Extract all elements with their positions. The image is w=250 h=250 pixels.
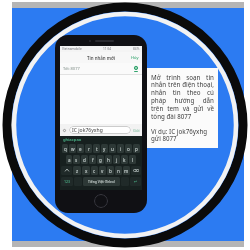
staticText: j xyxy=(116,157,118,163)
button[interactable]: h xyxy=(105,155,112,164)
staticText: 11:54 xyxy=(103,47,112,51)
staticText: f xyxy=(92,157,94,163)
button[interactable]: a xyxy=(66,155,72,164)
button[interactable]: w xyxy=(69,144,76,153)
button[interactable]: v xyxy=(99,166,106,175)
staticText: Tiếng Việt (Telex) xyxy=(88,179,115,184)
staticText: 84% xyxy=(133,47,140,51)
staticText: Vietnamobile xyxy=(62,47,82,51)
staticText: ↵ xyxy=(134,179,138,184)
button[interactable]: Camera xyxy=(62,124,140,136)
staticText: b xyxy=(109,168,112,174)
staticText: g xyxy=(99,157,102,163)
staticText: u xyxy=(111,146,114,152)
staticText: Tới: 8077 xyxy=(63,66,80,71)
staticText: n xyxy=(117,168,120,174)
staticText: ghiacpao xyxy=(63,137,82,143)
button[interactable]: Enter xyxy=(130,177,141,186)
staticText: y xyxy=(103,146,106,152)
staticText: IC jok76yxhg xyxy=(72,127,103,134)
staticText: q xyxy=(64,146,67,152)
button[interactable]: Shift xyxy=(61,166,72,175)
button[interactable]: t xyxy=(93,144,100,153)
button[interactable]: i xyxy=(117,144,124,153)
staticText: i xyxy=(120,146,122,152)
button[interactable]: d xyxy=(81,155,88,164)
staticText: Gửi xyxy=(133,128,140,133)
staticText: a xyxy=(68,157,71,163)
other: Camera xyxy=(62,128,67,133)
button[interactable]: Backspace xyxy=(131,166,141,175)
button[interactable]: l xyxy=(129,155,136,164)
button[interactable]: y xyxy=(101,144,108,153)
button[interactable]: f xyxy=(89,155,96,164)
button[interactable]: r xyxy=(85,144,92,153)
button[interactable]: e xyxy=(77,144,84,153)
button[interactable]: u xyxy=(109,144,116,153)
staticText: w xyxy=(71,146,75,152)
staticText: z xyxy=(76,168,79,174)
button[interactable]: j xyxy=(113,155,120,164)
staticText: e xyxy=(79,146,82,152)
other: Add contact xyxy=(133,66,139,72)
button[interactable]: c xyxy=(91,166,98,175)
button[interactable]: Home xyxy=(94,194,108,208)
button[interactable]: n xyxy=(115,166,122,175)
staticText: Tin nhắn mới xyxy=(87,55,116,61)
button[interactable]: k xyxy=(121,155,128,164)
button[interactable]: g xyxy=(97,155,104,164)
staticText: Ví dụ: IC jok76yxhg gửi 8077 xyxy=(151,127,214,143)
button[interactable]: 123 xyxy=(61,177,73,186)
staticText: l xyxy=(132,157,134,163)
staticText: ⌫ xyxy=(133,168,139,173)
staticText: o xyxy=(127,146,130,152)
button[interactable]: Tới: 8077 xyxy=(63,63,139,74)
staticText: s xyxy=(75,157,78,163)
button[interactable]: b xyxy=(107,166,114,175)
staticText: v xyxy=(101,168,104,174)
button[interactable]: Hủy xyxy=(131,55,139,60)
button[interactable]: m xyxy=(123,166,130,175)
button[interactable]: Vietnamobile xyxy=(55,35,147,213)
button[interactable]: x xyxy=(82,166,90,175)
staticText: 123 xyxy=(64,179,71,184)
staticText: p xyxy=(135,146,138,152)
button[interactable]: o xyxy=(125,144,132,153)
staticText: t xyxy=(96,146,98,152)
staticText: h xyxy=(107,157,110,163)
button[interactable]: Mở trình soạn tin nhắn trên điện thoại, … xyxy=(147,68,218,148)
button[interactable]: Tiếng Việt (Telex) xyxy=(83,177,120,186)
staticText: k xyxy=(123,157,126,163)
staticText: x xyxy=(85,168,88,174)
staticText: Mở trình soạn tin nhắn trên điện thoại, … xyxy=(151,73,214,121)
staticText: c xyxy=(93,168,96,174)
button[interactable]: z xyxy=(73,166,81,175)
staticText: d xyxy=(83,157,86,163)
staticText: m xyxy=(124,168,129,174)
staticText: r xyxy=(88,146,90,152)
button[interactable]: p xyxy=(133,144,140,153)
button[interactable]: q xyxy=(62,144,68,153)
button[interactable]: s xyxy=(73,155,80,164)
